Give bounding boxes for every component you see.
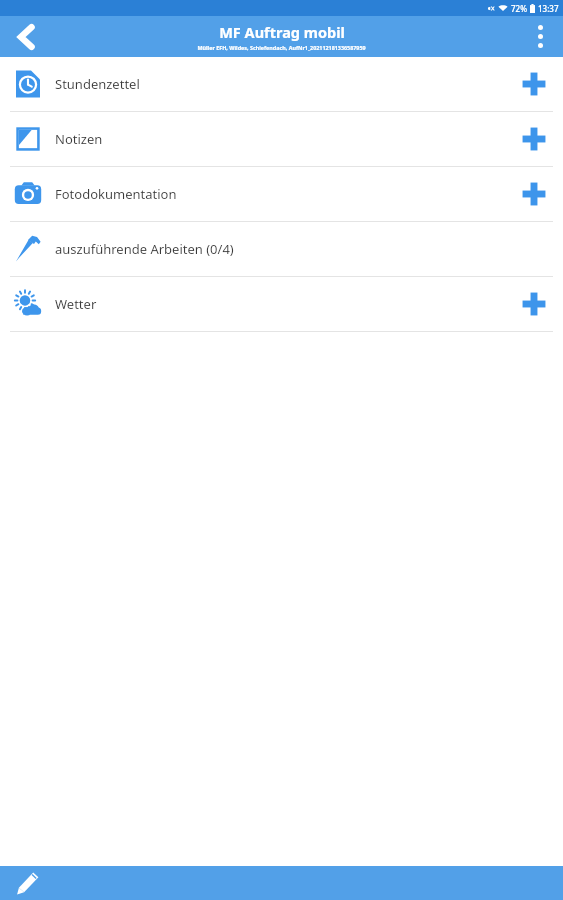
button[interactable]: Wetter bbox=[0, 277, 563, 331]
button[interactable]: Stundenzettel bbox=[0, 57, 563, 111]
button[interactable]: Add Stundenzettel bbox=[505, 57, 563, 111]
staticText: Notizen bbox=[55, 130, 505, 148]
button[interactable]: More options bbox=[517, 16, 563, 57]
staticText: 13:37 bbox=[538, 3, 559, 14]
staticText: Fotodokumentation bbox=[55, 185, 505, 203]
button[interactable]: Notizen bbox=[0, 112, 563, 166]
staticText: 72% bbox=[511, 3, 527, 14]
button[interactable]: Add Notizen bbox=[505, 112, 563, 166]
button[interactable]: Add Fotodokumentation bbox=[505, 167, 563, 221]
button[interactable]: Fotodokumentation bbox=[0, 167, 563, 221]
staticText: Müller EFH, Wildes, Schiefendach, AufNr1… bbox=[197, 44, 366, 51]
button[interactable]: auszuführende Arbeiten (0/4) bbox=[0, 222, 563, 276]
staticText: auszuführende Arbeiten (0/4) bbox=[55, 240, 505, 258]
staticText: Stundenzettel bbox=[55, 75, 505, 93]
button[interactable]: Edit bbox=[0, 866, 56, 900]
button[interactable]: Add Wetter bbox=[505, 277, 563, 331]
staticText: Wetter bbox=[55, 295, 505, 313]
staticText: MF Auftrag mobil bbox=[219, 22, 345, 42]
button[interactable]: Back bbox=[0, 16, 50, 57]
